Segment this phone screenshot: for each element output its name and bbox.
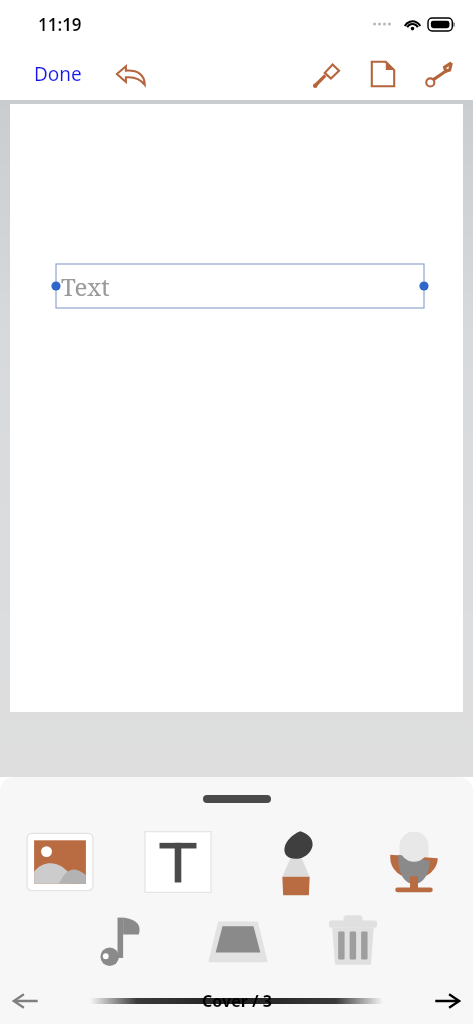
button[interactable]: Insert image (0, 825, 119, 899)
button[interactable]: Music (64, 909, 180, 971)
button[interactable]: Pen tool (305, 52, 349, 96)
button[interactable]: Delete (295, 909, 410, 971)
button[interactable]: Text (56, 264, 424, 308)
button[interactable]: Next page (425, 984, 469, 1018)
button[interactable]: Drag handle (203, 795, 271, 803)
button[interactable]: Undo (106, 49, 156, 99)
staticText: Done (34, 61, 82, 87)
staticText: Cover / 3 (202, 990, 272, 1012)
button[interactable]: Record audio (355, 825, 473, 899)
button[interactable]: Insert text (119, 825, 237, 899)
button[interactable]: Eraser (180, 909, 295, 971)
button[interactable]: Draw (237, 825, 355, 899)
button[interactable]: Done (22, 55, 94, 93)
staticText: Text (61, 270, 110, 303)
staticText: 11:19 (38, 13, 82, 36)
button[interactable]: Page (361, 52, 405, 96)
button[interactable]: Previous page (4, 984, 48, 1018)
button[interactable]: Settings (417, 52, 461, 96)
